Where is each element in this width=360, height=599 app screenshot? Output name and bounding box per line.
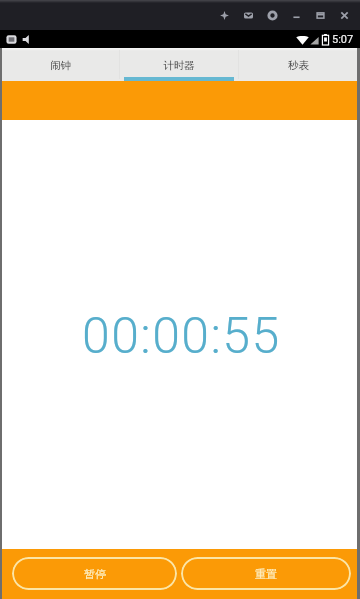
- staticText: 00:00:55: [82, 307, 281, 366]
- button[interactable]: 重置: [181, 557, 351, 590]
- staticText: 秒表: [288, 59, 309, 72]
- button[interactable]: 秒表: [239, 48, 357, 81]
- staticText: 计时器: [163, 59, 195, 72]
- staticText: 5:07: [332, 33, 354, 46]
- button[interactable]: 计时器: [120, 48, 238, 81]
- button[interactable]: 暂停: [12, 557, 177, 590]
- button[interactable]: Pin: [212, 4, 236, 26]
- button[interactable]: Close: [332, 4, 356, 26]
- button[interactable]: 闹钟: [2, 48, 119, 81]
- button[interactable]: Mail: [236, 4, 260, 26]
- button[interactable]: Minimize: [284, 4, 308, 26]
- staticText: 重置: [255, 567, 277, 581]
- button[interactable]: Maximize: [308, 4, 332, 26]
- button[interactable]: Settings: [260, 4, 284, 26]
- staticText: 暂停: [84, 567, 106, 581]
- staticText: 闹钟: [50, 59, 71, 72]
